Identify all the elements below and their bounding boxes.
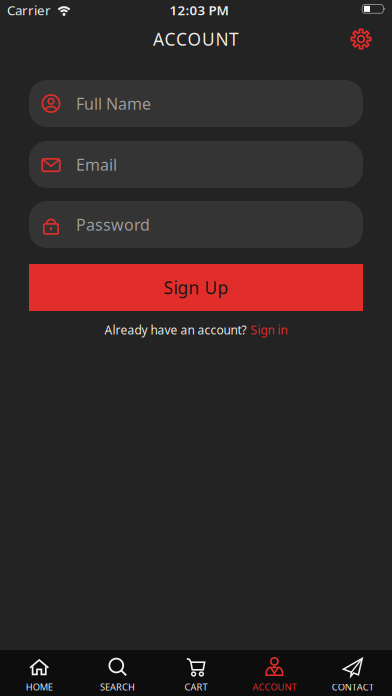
button[interactable]: CART [157, 650, 235, 696]
button[interactable]: Sign in [250, 322, 287, 338]
staticText: ACCOUNT [153, 27, 239, 50]
staticText: Email [76, 154, 117, 175]
button[interactable] [350, 28, 372, 50]
staticText: Sign Up [163, 276, 228, 299]
staticText: Sign in [250, 322, 287, 338]
staticText: ACCOUNT [252, 681, 296, 693]
staticText: SEARCH [100, 681, 135, 693]
staticText: CART [184, 681, 207, 693]
staticText: Full Name [76, 93, 151, 114]
staticText: HOME [26, 681, 53, 693]
staticText: 12:03 PM [169, 1, 228, 19]
button[interactable]: Password [29, 201, 363, 248]
staticText: Already have an account? [104, 322, 246, 338]
staticText: Password [76, 214, 150, 235]
staticText: Carrier [7, 1, 51, 19]
button[interactable]: ACCOUNT [235, 650, 314, 696]
button[interactable]: Full Name [29, 80, 363, 127]
button[interactable]: HOME [0, 650, 78, 696]
button[interactable]: Sign Up [29, 264, 363, 311]
button[interactable]: SEARCH [78, 650, 157, 696]
button[interactable]: Email [29, 141, 363, 188]
button[interactable]: CONTACT [314, 650, 392, 696]
staticText: CONTACT [332, 681, 374, 693]
